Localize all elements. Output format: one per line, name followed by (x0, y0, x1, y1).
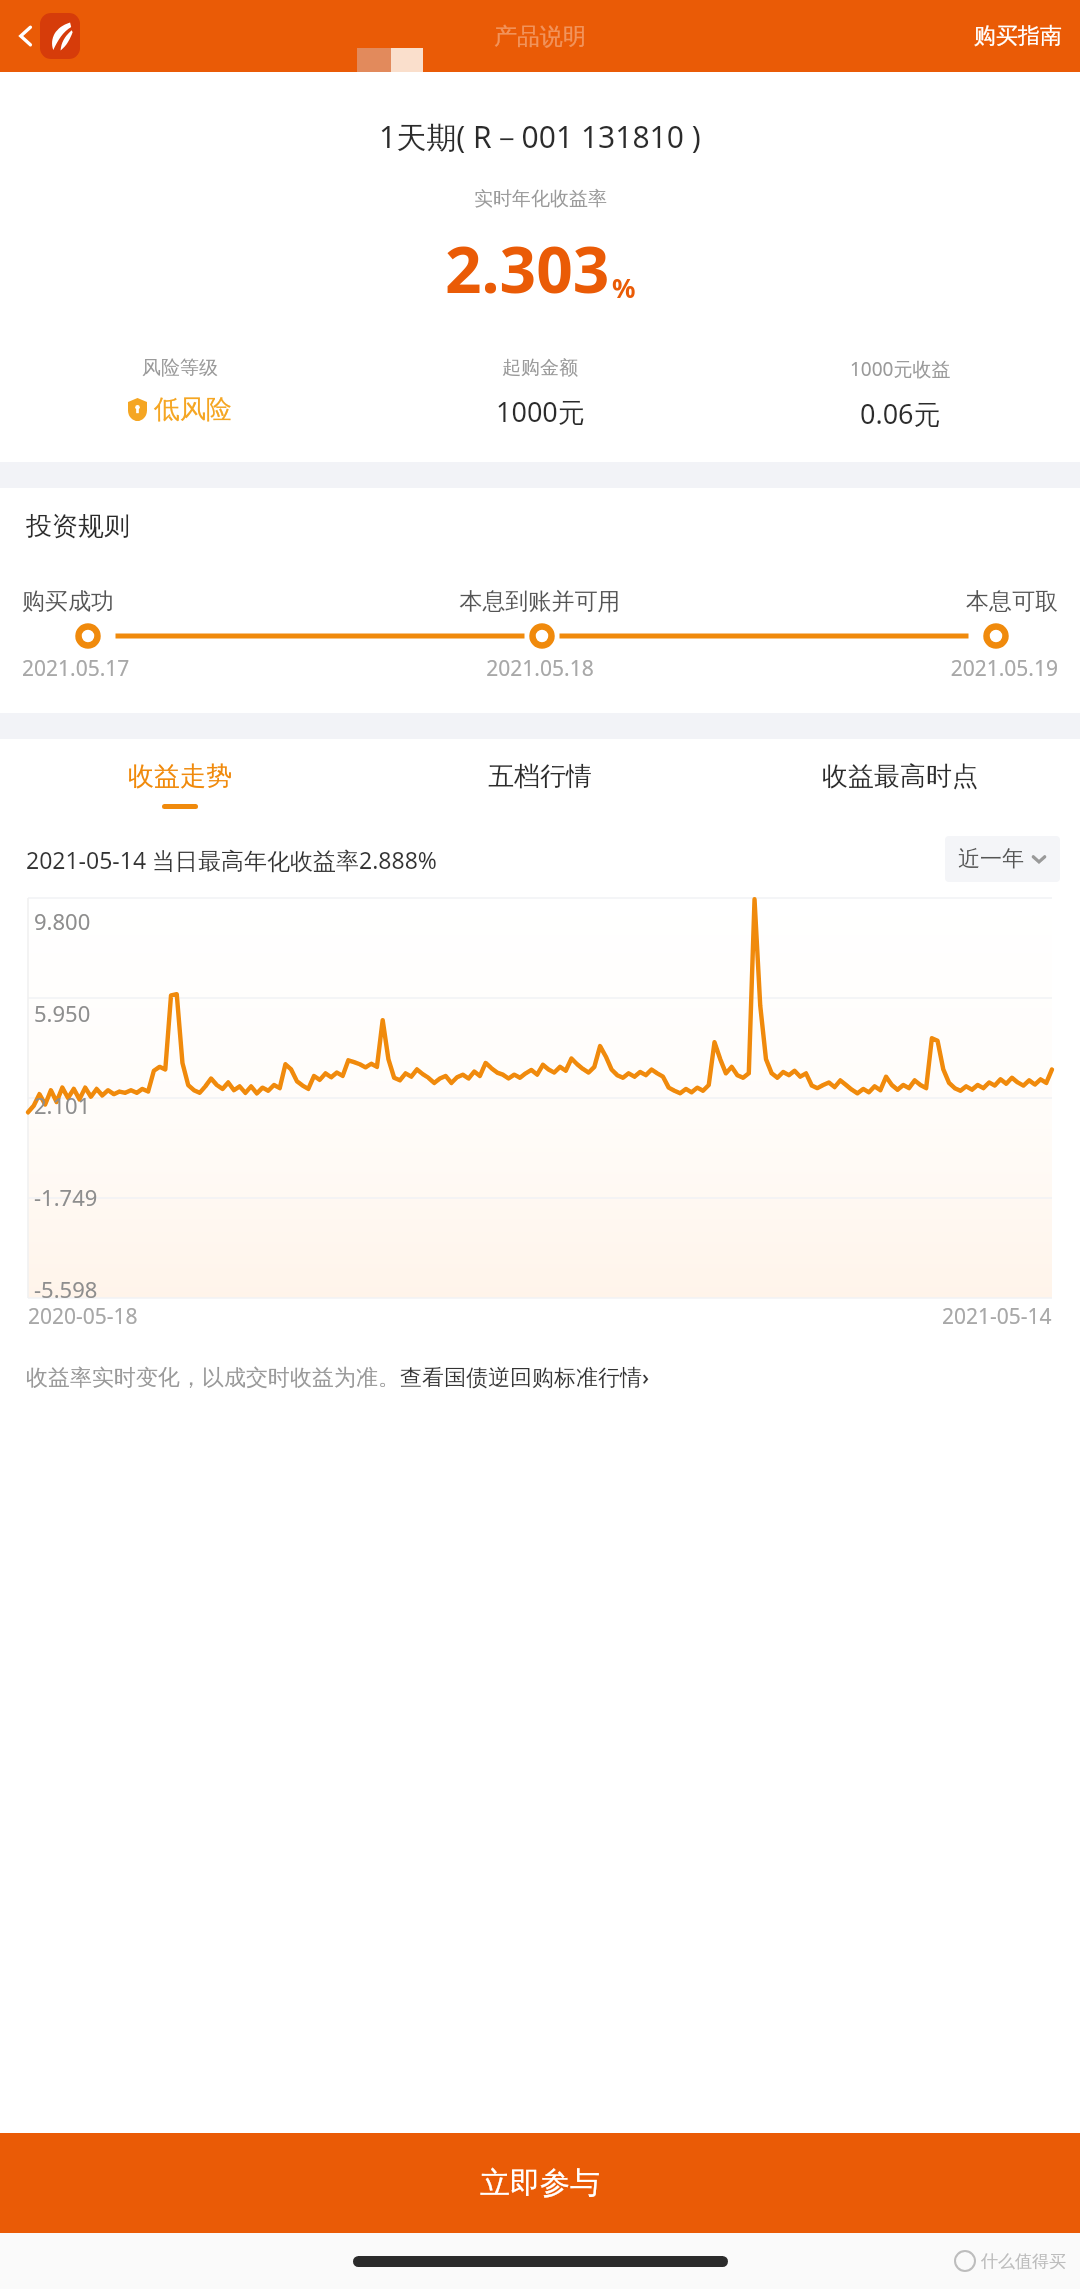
staticText: 收益走势 (128, 760, 232, 793)
staticText: 起购金额 (502, 356, 578, 380)
staticText: 2021.05.17 (22, 654, 341, 683)
button[interactable]: 起购金额 (360, 354, 720, 432)
staticText: 什么值得买 (981, 2251, 1066, 2272)
staticText: 近一年 (958, 845, 1024, 873)
staticText: 1000元 (496, 393, 585, 430)
staticText: 2021.05.18 (341, 654, 739, 683)
button[interactable]: 收益率实时变化，以成交时收益为准。查看国债逆回购标准行情› (26, 1361, 1060, 1391)
button[interactable]: 风险等级 (0, 354, 360, 428)
button[interactable]: Back (4, 14, 48, 58)
staticText: 产品说明 (494, 22, 586, 51)
staticText: 实时年化收益率 (474, 187, 607, 211)
staticText: 1天期( R－001 131810 ) (379, 116, 701, 157)
staticText: 1000元收益 (850, 356, 951, 382)
staticText: 2021.05.19 (739, 654, 1058, 683)
staticText: 五档行情 (488, 760, 592, 793)
staticText: 本息可取 (739, 587, 1058, 616)
staticText: 投资规则 (26, 510, 130, 543)
staticText: 购买指南 (974, 22, 1062, 50)
staticText: 2020-05-18 (28, 1302, 138, 1331)
staticText: 2.303 (445, 225, 610, 312)
staticText: 收益率实时变化，以成交时收益为准。查看国债逆回购标准行情› (26, 1361, 650, 1391)
staticText: 9.800 (34, 906, 91, 936)
staticText: 收益最高时点 (822, 760, 978, 793)
staticText: -5.598 (34, 1274, 98, 1298)
staticText: -1.749 (34, 1182, 98, 1212)
staticText: 0.06元 (860, 395, 941, 432)
staticText: 2021-05-14 (942, 1302, 1052, 1331)
staticText: 本息到账并可用 (341, 587, 739, 616)
staticText: 风险等级 (142, 356, 218, 380)
staticText: % (612, 270, 636, 305)
button[interactable]: Logo (40, 13, 80, 59)
staticText: 立即参与 (480, 2164, 600, 2202)
button[interactable]: 收益走势 (0, 755, 360, 814)
staticText: 2021-05-14 当日最高年化收益率2.888% (26, 844, 437, 875)
staticText: 低风险 (154, 393, 232, 426)
staticText: 5.950 (34, 998, 91, 1028)
staticText: 购买成功 (22, 587, 341, 616)
button[interactable]: 近一年 (945, 836, 1060, 882)
button[interactable]: 收益最高时点 (720, 755, 1080, 814)
button[interactable]: 购买指南 (956, 10, 1080, 62)
staticText: 2.101 (34, 1090, 91, 1120)
button[interactable]: 五档行情 (360, 755, 720, 814)
button[interactable]: 立即参与 (0, 2133, 1080, 2233)
button[interactable]: 1000元收益 (720, 354, 1080, 434)
